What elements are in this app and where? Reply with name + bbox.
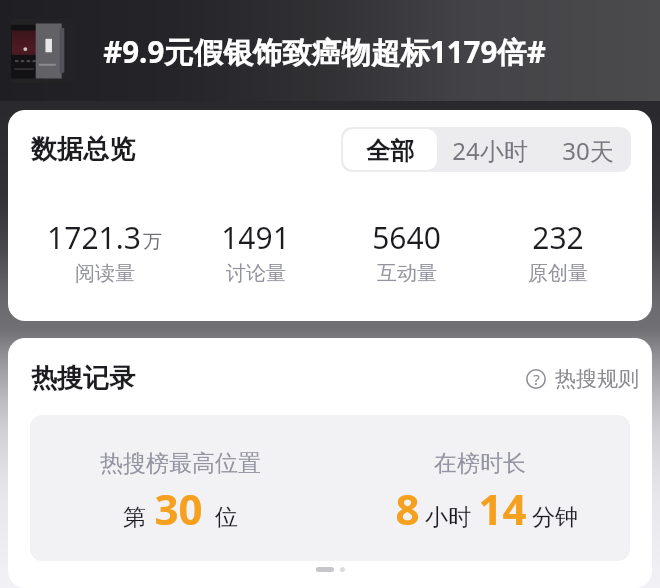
staticText: 热搜记录 [31,362,135,395]
button[interactable]: 232 [482,217,633,286]
button[interactable]: 热搜规则 [526,366,639,392]
button[interactable]: 视频封面 [11,19,76,83]
staticText: 5640 [372,217,441,258]
staticText: 1491 [221,217,290,258]
staticText: 小时 [425,503,471,532]
staticText: 1721.3 [47,217,141,258]
staticText: 热搜规则 [555,366,639,392]
staticText: 位 [215,503,238,532]
staticText: #9.9元假银饰致癌物超标1179倍# [103,31,546,71]
staticText: 互动量 [377,261,437,286]
button[interactable]: 24小时 [439,127,545,172]
staticText: 分钟 [532,503,578,532]
button[interactable]: 1491 [180,217,331,286]
staticText: 24小时 [452,134,528,165]
staticText: 讨论量 [226,261,286,286]
button[interactable]: 全部 [343,129,437,170]
staticText: 14 [478,480,527,537]
staticText: 数据总览 [31,133,135,166]
staticText: 在榜时长 [434,449,526,478]
button[interactable]: 30天 [545,127,631,172]
staticText: ? [533,369,540,389]
staticText: 原创量 [528,261,588,286]
button[interactable]: 5640 [331,217,482,286]
staticText: 全部 [366,136,414,163]
staticText: 8 [395,480,420,537]
staticText: 232 [532,217,584,258]
button[interactable]: 在榜时长 [330,415,630,561]
button[interactable]: 热搜榜最高位置 [30,415,330,561]
staticText: 30 [154,480,203,537]
staticText: 热搜榜最高位置 [100,449,261,478]
staticText: 阅读量 [75,261,135,286]
staticText: 30天 [562,134,614,165]
staticText: 万 [143,230,162,254]
staticText: 第 [123,503,146,532]
button[interactable]: 1721.3 [29,217,180,286]
